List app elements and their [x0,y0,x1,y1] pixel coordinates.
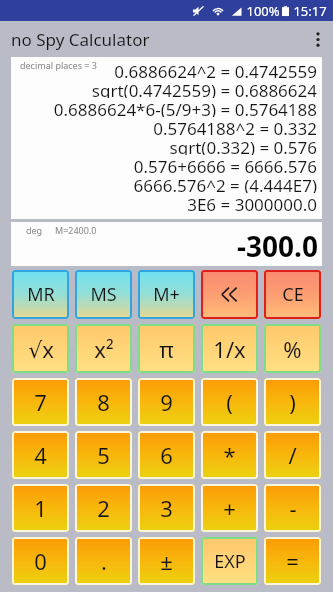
staticText: 4 [34,440,47,470]
staticText: % [283,334,302,364]
staticText: x² [94,334,114,364]
staticText: 0.6886624^2 = 0.4742559 [114,60,317,79]
staticText: CE [282,282,304,307]
staticText: M+ [153,282,180,307]
staticText: -300.0 [237,227,318,265]
button[interactable]: 6 [138,431,195,479]
button[interactable]: EXP [201,537,258,585]
button[interactable]: MR [12,270,69,319]
staticText: EXP [214,549,246,574]
staticText: 5 [97,440,110,470]
staticText: sqrt(0.4742559) = 0.6886624 [91,79,317,98]
button[interactable]: Backspace [201,270,258,319]
staticText: 6 [160,440,173,470]
button[interactable]: . [75,537,132,585]
button[interactable]: = [264,537,321,585]
staticText: 7 [34,387,47,417]
staticText: 100% [246,2,280,20]
button[interactable]: + [201,484,258,532]
staticText: sqrt(0.332) = 0.576 [169,136,317,155]
button[interactable]: 2 [75,484,132,532]
button[interactable]: √x [12,324,69,373]
staticText: deg [26,224,43,236]
button[interactable]: - [264,484,321,532]
staticText: √x [28,334,54,364]
staticText: 0 [34,546,47,576]
staticText: ( [226,387,233,417]
staticText: 6666.576^2 = (4.444E7) [133,174,317,193]
staticText: MR [27,282,55,307]
staticText: / [288,440,297,470]
staticText: 0.5764188^2 = 0.332 [153,117,317,136]
staticText: - [289,493,297,523]
button[interactable]: 9 [138,378,195,426]
button[interactable]: M+ [138,270,195,319]
staticText: 2 [97,493,110,523]
staticText: 1 [34,493,47,523]
button[interactable]: x² [75,324,132,373]
button[interactable]: % [264,324,321,373]
staticText: 8 [97,387,110,417]
button[interactable]: 8 [75,378,132,426]
staticText: ± [160,546,173,576]
staticText: 0.576+6666 = 6666.576 [133,155,317,174]
button[interactable]: 0 [12,537,69,585]
staticText: π [159,334,174,364]
button[interactable]: ± [138,537,195,585]
staticText: . [101,546,107,576]
staticText: 9 [160,387,173,417]
staticText: = [286,546,299,576]
staticText: 3E6 = 3000000.0 [187,193,317,212]
button[interactable]: * [201,431,258,479]
staticText: * [223,440,236,470]
staticText: MS [90,282,117,307]
staticText: no Spy Calculator [11,28,150,51]
button[interactable]: 1 [12,484,69,532]
staticText: 1/x [213,334,246,364]
staticText: + [223,493,236,523]
button[interactable]: 3 [138,484,195,532]
staticText: ) [289,387,296,417]
button[interactable]: MS [75,270,132,319]
button[interactable]: π [138,324,195,373]
button[interactable]: 5 [75,431,132,479]
button[interactable]: 1/x [201,324,258,373]
button[interactable]: CE [264,270,321,319]
button[interactable]: / [264,431,321,479]
staticText: 15:17 [293,2,327,20]
staticText: M=2400.0 [55,224,97,236]
button[interactable]: ( [201,378,258,426]
button[interactable]: 4 [12,431,69,479]
button[interactable]: ) [264,378,321,426]
staticText: decimal places = 3 [20,59,97,71]
staticText: 3 [160,493,173,523]
button[interactable]: 7 [12,378,69,426]
button[interactable]: More options [303,21,333,57]
staticText: 0.6886624*6-(5/9+3) = 0.5764188 [53,98,317,117]
